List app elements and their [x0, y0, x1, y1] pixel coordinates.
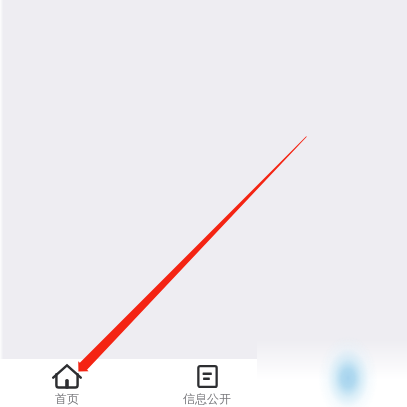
staticText: 信息公开	[183, 391, 231, 406]
button[interactable]: 首页 Home	[32, 359, 102, 407]
button[interactable]: 信息公开 Information disclosure	[172, 359, 242, 407]
other: Home	[52, 364, 82, 389]
staticText: 首页	[55, 391, 79, 406]
other: Information disclosure	[197, 365, 218, 388]
